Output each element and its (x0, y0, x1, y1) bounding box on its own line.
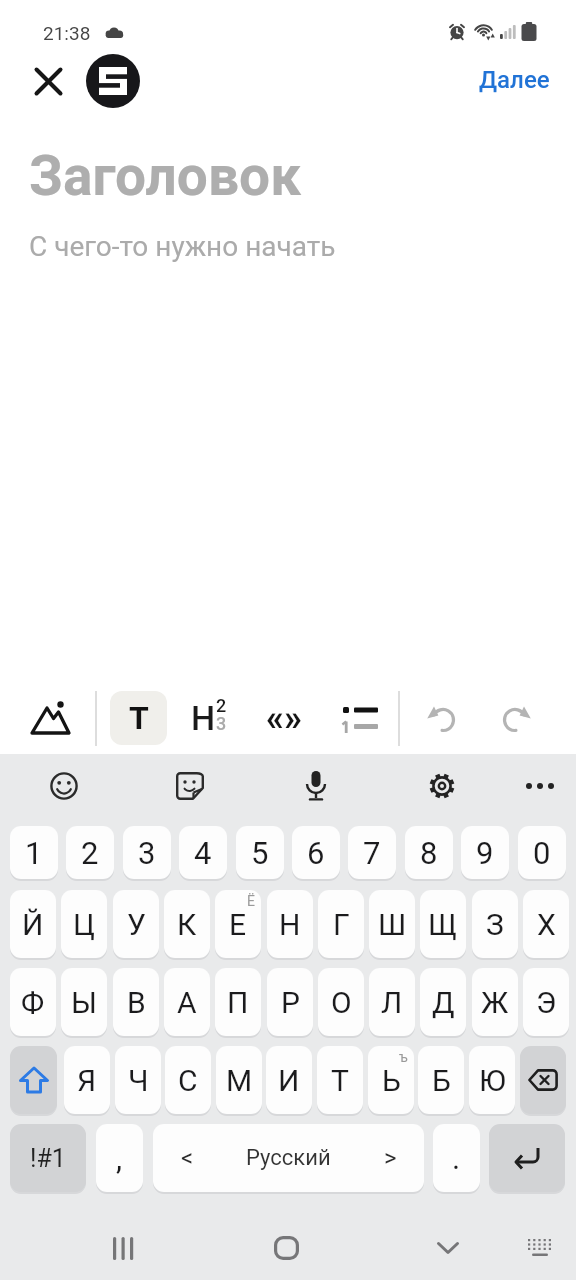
button[interactable]: С (165, 1046, 211, 1114)
staticText: Х (537, 907, 556, 942)
staticText: > (384, 1144, 397, 1172)
staticText: 4 (194, 835, 212, 871)
button[interactable] (491, 694, 539, 742)
staticText: У (127, 907, 146, 942)
button[interactable] (26, 694, 74, 742)
button[interactable]: М (216, 1046, 262, 1114)
button[interactable]: Е (215, 890, 261, 958)
staticText: Ч (128, 1063, 149, 1098)
button[interactable]: Т (317, 1046, 363, 1114)
button[interactable] (518, 764, 562, 808)
staticText: Ё (247, 893, 255, 909)
staticText: М (226, 1063, 253, 1098)
button[interactable]: В (113, 968, 159, 1036)
button[interactable]: О (318, 968, 364, 1036)
button[interactable]: «» (258, 694, 310, 742)
button[interactable]: . (433, 1124, 480, 1192)
button[interactable] (294, 764, 338, 808)
button[interactable] (420, 764, 464, 808)
button[interactable]: Э (523, 968, 569, 1036)
staticText: . (452, 1140, 461, 1176)
button[interactable]: П (215, 968, 261, 1036)
staticText: Э (536, 985, 557, 1020)
button[interactable] (489, 1124, 565, 1192)
staticText: 3 (138, 835, 156, 871)
staticText: В (127, 985, 146, 1020)
staticText: 8 (420, 835, 438, 871)
button[interactable]: Ь (368, 1046, 414, 1114)
staticText: Щ (428, 907, 458, 942)
button[interactable] (262, 1224, 310, 1272)
button[interactable] (424, 1224, 472, 1272)
button[interactable]: З (472, 890, 518, 958)
button[interactable]: Ф (10, 968, 56, 1036)
staticText: Русский (246, 1145, 331, 1171)
button[interactable] (42, 764, 86, 808)
button[interactable]: А (164, 968, 210, 1036)
button[interactable]: 6 (292, 826, 340, 879)
button[interactable]: Щ (420, 890, 466, 958)
staticText: 2 (81, 835, 99, 871)
staticText: Л (381, 985, 403, 1020)
staticText: Ю (479, 1063, 506, 1098)
button[interactable]: 1 (10, 826, 58, 879)
staticText: Ш (378, 907, 407, 942)
button[interactable]: Р (267, 968, 313, 1036)
button[interactable]: 7 (348, 826, 396, 879)
button[interactable]: Ш (369, 890, 415, 958)
staticText: С чего-то нужно начать (29, 230, 336, 263)
button[interactable]: Л (369, 968, 415, 1036)
button[interactable]: T (110, 691, 167, 745)
button[interactable]: 9 (461, 826, 509, 879)
button[interactable]: Я (64, 1046, 110, 1114)
button[interactable]: 4 (179, 826, 227, 879)
button[interactable]: Ч (115, 1046, 161, 1114)
staticText: !#1 (30, 1144, 66, 1173)
staticText: Заголовок (29, 144, 302, 208)
button[interactable]: Ц (61, 890, 107, 958)
button[interactable]: Ы (61, 968, 107, 1036)
staticText: T (129, 699, 149, 737)
staticText: 5 (251, 835, 269, 871)
button[interactable] (100, 1224, 148, 1272)
button[interactable]: Й (10, 890, 56, 958)
button[interactable]: Д (420, 968, 466, 1036)
button[interactable]: Ж (472, 968, 518, 1036)
button[interactable]: 3 (123, 826, 171, 879)
button[interactable]: 2 (66, 826, 114, 879)
staticText: О (331, 985, 352, 1020)
button[interactable]: Б (418, 1046, 464, 1114)
button[interactable]: К (164, 890, 210, 958)
staticText: Далее (479, 66, 550, 94)
button[interactable]: У (113, 890, 159, 958)
button[interactable]: Далее (430, 58, 550, 102)
button[interactable] (10, 1046, 57, 1114)
button[interactable]: 5 (236, 826, 284, 879)
staticText: 2 (216, 695, 227, 716)
button[interactable]: !#1 (10, 1124, 86, 1192)
staticText: П (227, 985, 249, 1020)
staticText: Д (432, 985, 455, 1020)
button[interactable] (168, 764, 212, 808)
button[interactable]: Ю (469, 1046, 515, 1114)
staticText: Ж (481, 985, 509, 1020)
button[interactable]: < (153, 1124, 424, 1192)
button[interactable]: 8 (405, 826, 453, 879)
button[interactable] (520, 1046, 566, 1114)
button[interactable] (26, 59, 70, 103)
button[interactable]: Н (267, 890, 313, 958)
button[interactable] (334, 694, 382, 742)
button[interactable] (419, 694, 467, 742)
staticText: 21:38 (43, 22, 91, 44)
button[interactable]: , (96, 1124, 143, 1192)
button[interactable]: И (266, 1046, 312, 1114)
button[interactable]: Г (318, 890, 364, 958)
staticText: < (181, 1144, 194, 1172)
button[interactable]: Х (523, 890, 569, 958)
staticText: 3 (216, 713, 227, 734)
button[interactable] (516, 1224, 564, 1272)
button[interactable]: H (186, 694, 236, 742)
staticText: 7 (363, 835, 381, 871)
staticText: К (177, 907, 197, 942)
button[interactable]: 0 (518, 826, 566, 879)
